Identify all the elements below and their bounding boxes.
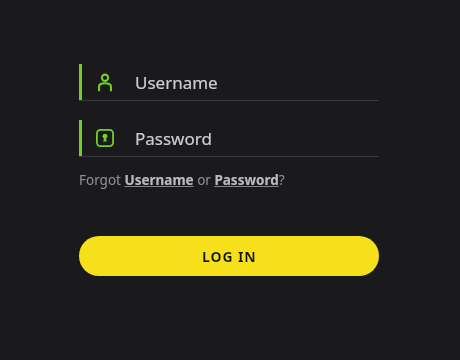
staticText: Username bbox=[135, 71, 218, 94]
staticText: Forgot Username or Password? bbox=[79, 171, 285, 189]
button[interactable]: Forgot Username or Password? bbox=[79, 171, 285, 189]
staticText: Password bbox=[135, 127, 212, 150]
button[interactable]: LOG IN bbox=[79, 236, 379, 276]
staticText: LOG IN bbox=[202, 247, 257, 266]
button[interactable]: Password bbox=[79, 120, 379, 157]
button[interactable]: Username bbox=[79, 64, 379, 101]
other: Password bbox=[96, 129, 114, 147]
other: Username bbox=[96, 73, 114, 91]
